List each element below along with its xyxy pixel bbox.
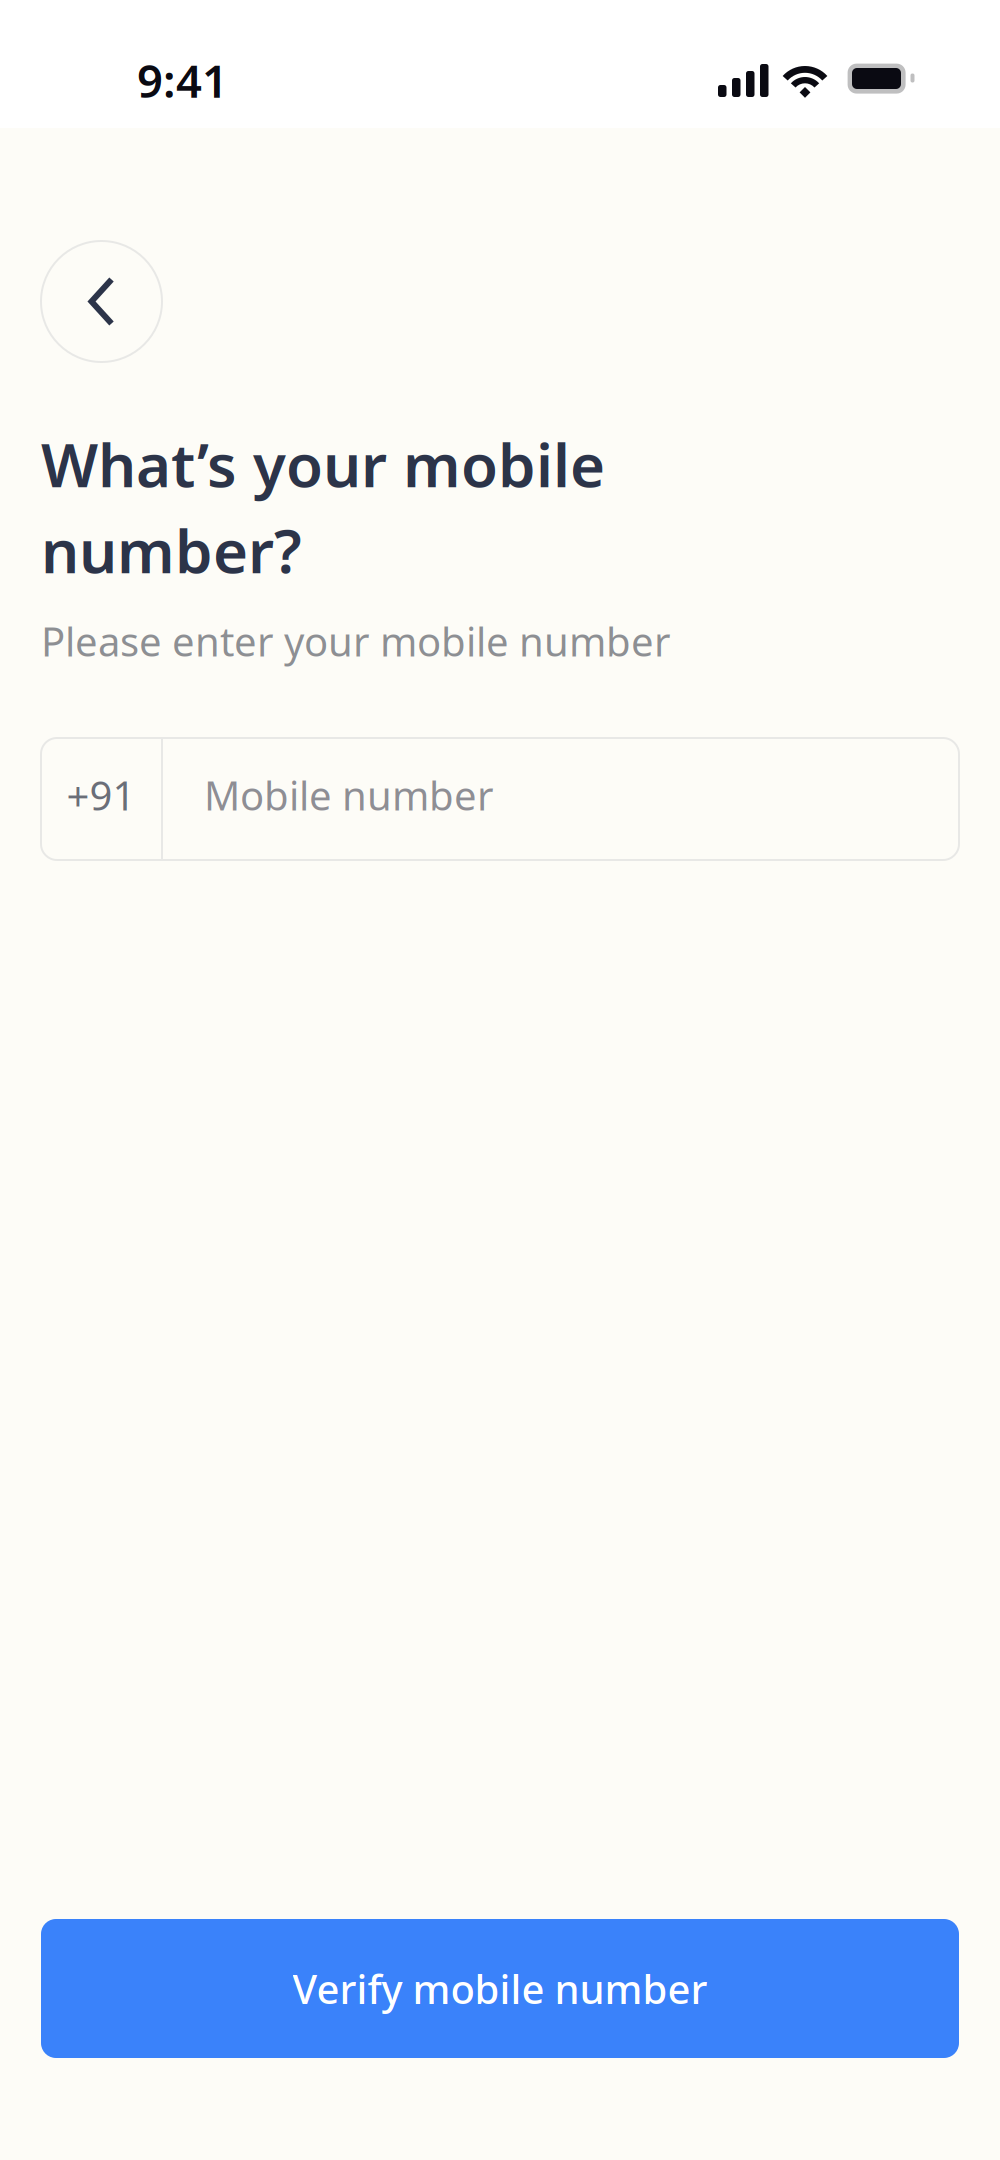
button[interactable]: Verify mobile number xyxy=(41,1919,959,2058)
button[interactable]: Back xyxy=(41,241,162,362)
staticText: Verify mobile number xyxy=(292,1962,707,2015)
staticText: Please enter your mobile number xyxy=(41,614,671,667)
button[interactable]: +91 xyxy=(41,738,959,860)
staticText: 9:41 xyxy=(137,50,228,110)
staticText: +91 xyxy=(66,768,135,821)
staticText: Mobile number xyxy=(204,768,494,821)
staticText: What’s your mobile xyxy=(41,424,605,504)
staticText: number? xyxy=(41,510,302,590)
